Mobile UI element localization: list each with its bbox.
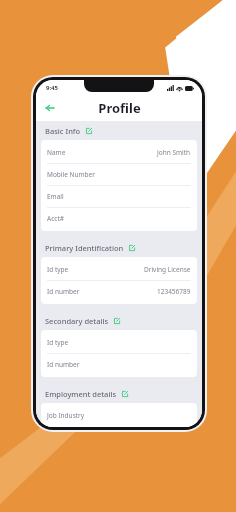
button[interactable]: Mobile Number (41, 164, 197, 185)
staticText: Id type (47, 265, 69, 274)
button[interactable]: Primary Identification (36, 238, 202, 257)
staticText: Driving License (144, 265, 191, 274)
staticText: Employment details (45, 389, 117, 399)
button[interactable]: Id number (41, 354, 197, 375)
staticText: Primary Identification (45, 243, 124, 253)
staticText: 123456789 (157, 287, 191, 296)
button[interactable]: Email (41, 186, 197, 207)
other: Edit Employment details (120, 389, 129, 398)
staticText: Profile (98, 99, 141, 117)
button[interactable]: Name (41, 142, 197, 163)
button[interactable]: Back (41, 99, 59, 117)
button[interactable]: Id type (41, 259, 197, 280)
other: Edit Basic Info (84, 126, 93, 135)
staticText: 9:45 (46, 84, 58, 92)
staticText: Id number (47, 360, 80, 369)
staticText: Job Industry (47, 411, 85, 420)
button[interactable]: Secondary details (36, 311, 202, 330)
staticText: Name (47, 148, 66, 157)
staticText: Email (47, 192, 64, 201)
staticText: Acct# (47, 214, 64, 223)
button[interactable]: Acct# (41, 208, 197, 229)
staticText: Mobile Number (47, 170, 95, 179)
staticText: Id number (47, 287, 80, 296)
button[interactable]: Basic Info (36, 121, 202, 140)
staticText: Basic Info (45, 126, 81, 136)
button[interactable]: Id number (41, 281, 197, 302)
button[interactable]: Job Industry (41, 405, 197, 425)
staticText: Secondary details (45, 316, 109, 326)
button[interactable]: Id type (41, 332, 197, 353)
other: Edit Secondary details (112, 316, 121, 325)
other: Edit Primary Identification (127, 243, 136, 252)
button[interactable]: Employment details (36, 384, 202, 403)
staticText: Id type (47, 338, 69, 347)
staticText: John Smith (157, 148, 191, 157)
